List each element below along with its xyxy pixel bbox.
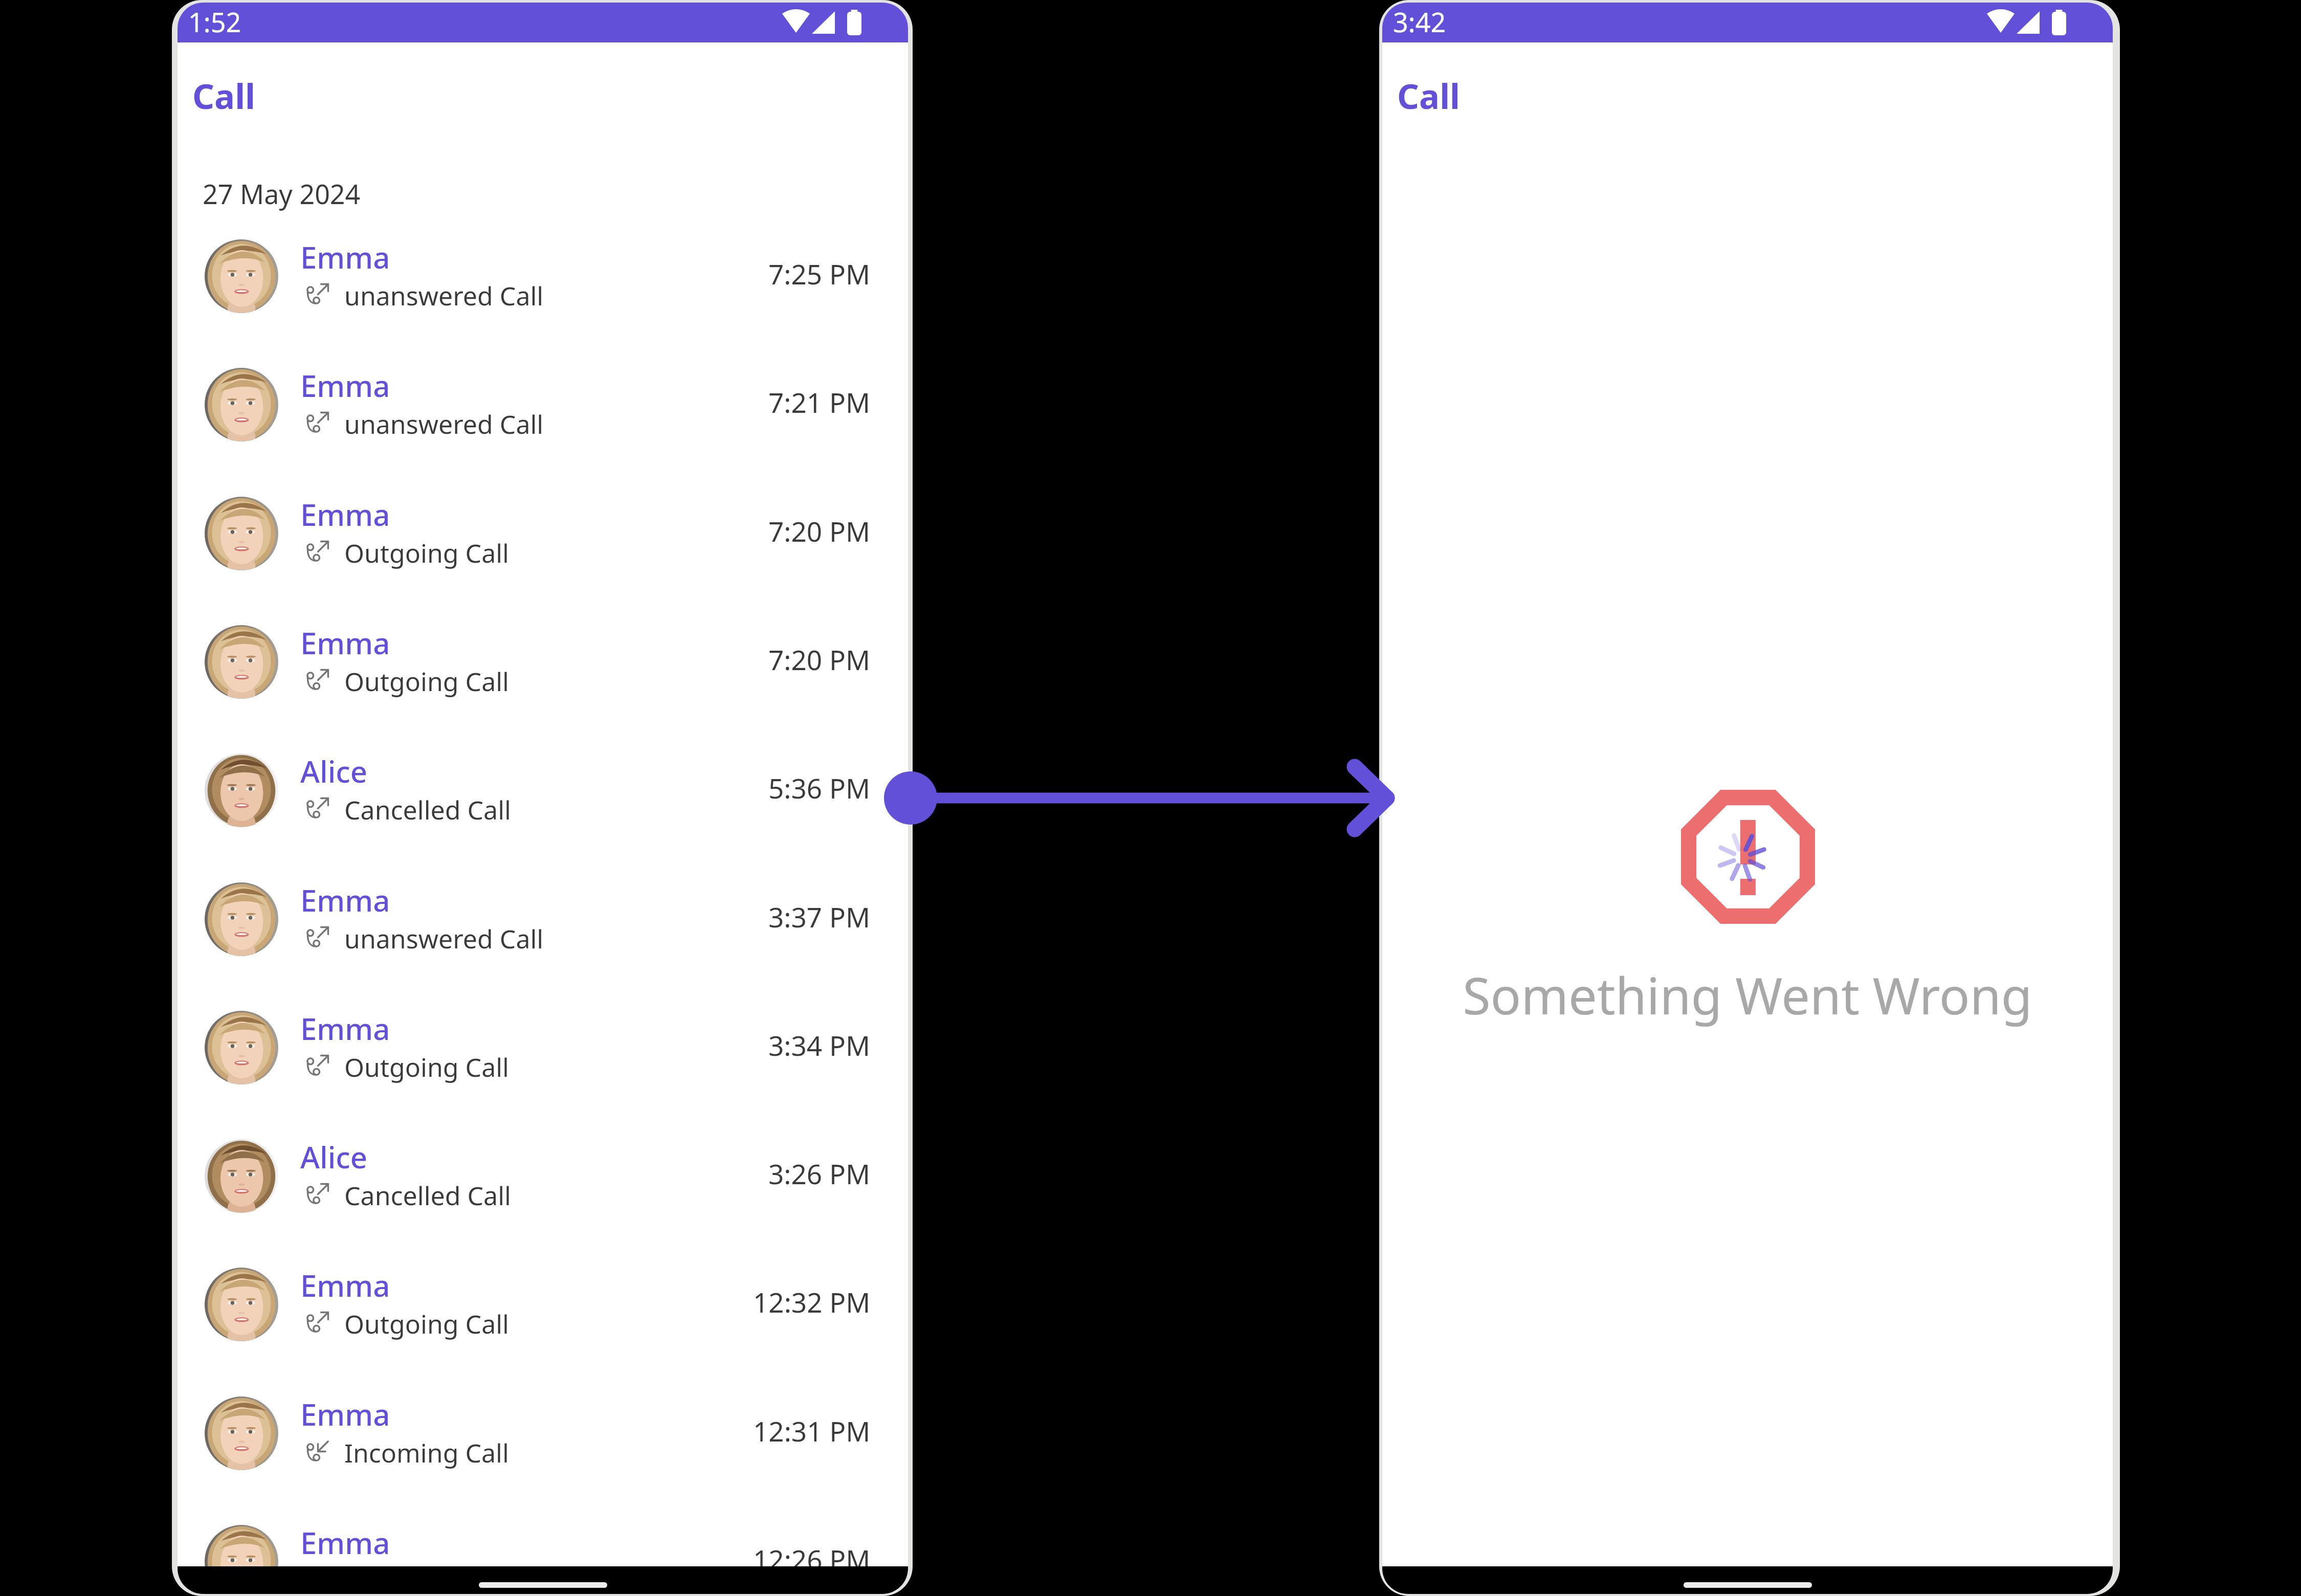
staticText: Incoming Call: [344, 1435, 509, 1470]
staticText: 7:21 PM: [768, 384, 871, 420]
button[interactable]: Open contact Emma: [178, 239, 908, 368]
staticText: 7:25 PM: [768, 255, 871, 292]
staticText: unanswered Call: [344, 407, 544, 441]
staticText: Cancelled Call: [344, 1178, 511, 1213]
button[interactable]: Open contact Alice: [178, 753, 908, 882]
staticText: unanswered Call: [344, 921, 544, 956]
staticText: Something Went Wrong: [1463, 960, 2032, 1029]
staticText: 3:42: [1393, 4, 1446, 40]
staticText: Call: [192, 72, 256, 119]
button[interactable]: Open contact Emma: [178, 1525, 908, 1594]
button[interactable]: Open contact Emma: [178, 1011, 908, 1139]
staticText: Cancelled Call: [344, 792, 511, 827]
staticText: Emma: [300, 1265, 390, 1305]
staticText: 3:34 PM: [768, 1027, 871, 1063]
staticText: Emma: [300, 365, 390, 406]
staticText: 12:31 PM: [753, 1412, 871, 1449]
button[interactable]: Open contact Alice: [205, 1139, 278, 1213]
staticText: unanswered Call: [344, 278, 544, 313]
button[interactable]: Open contact Emma: [205, 625, 278, 699]
staticText: Outgoing Call: [344, 1050, 509, 1084]
staticText: Alice: [300, 751, 368, 791]
staticText: Emma: [300, 237, 390, 277]
staticText: Outgoing Call: [344, 1564, 509, 1594]
staticText: Call: [1397, 72, 1461, 119]
staticText: 3:37 PM: [768, 898, 871, 935]
button[interactable]: Open contact Emma: [178, 882, 908, 1011]
button[interactable]: Open contact Emma: [178, 625, 908, 753]
staticText: 27 May 2024: [203, 175, 361, 212]
button[interactable]: Open contact Emma: [205, 1396, 278, 1470]
staticText: 12:32 PM: [753, 1283, 871, 1320]
staticText: 1:52: [188, 4, 241, 40]
staticText: Emma: [300, 1522, 390, 1563]
staticText: 3:26 PM: [768, 1155, 871, 1192]
staticText: Outgoing Call: [344, 664, 509, 699]
button[interactable]: Open contact Emma: [178, 1396, 908, 1525]
button[interactable]: Open contact Emma: [205, 497, 278, 570]
staticText: 7:20 PM: [768, 641, 871, 678]
button[interactable]: Open contact Emma: [178, 368, 908, 496]
button[interactable]: Retry, something went wrong: [1681, 790, 1815, 924]
button[interactable]: Open contact Emma: [178, 1268, 908, 1396]
staticText: Alice: [300, 1137, 368, 1177]
staticText: Emma: [300, 880, 390, 920]
staticText: 5:36 PM: [768, 769, 871, 806]
button[interactable]: Open contact Emma: [205, 368, 278, 441]
button[interactable]: Open contact Emma: [205, 1268, 278, 1341]
button[interactable]: Open contact Alice: [178, 1139, 908, 1268]
staticText: Outgoing Call: [344, 536, 509, 570]
staticText: Emma: [300, 623, 390, 663]
staticText: 12:26 PM: [753, 1541, 871, 1578]
staticText: 7:20 PM: [768, 513, 871, 549]
button[interactable]: Open contact Emma: [178, 497, 908, 625]
button[interactable]: Open contact Emma: [205, 882, 278, 956]
staticText: Outgoing Call: [344, 1306, 509, 1341]
staticText: Emma: [300, 494, 390, 535]
button[interactable]: Open contact Emma: [205, 1011, 278, 1084]
button[interactable]: Open contact Emma: [205, 239, 278, 313]
staticText: Emma: [300, 1008, 390, 1049]
button[interactable]: Open contact Alice: [205, 753, 278, 827]
button[interactable]: Open contact Emma: [205, 1525, 278, 1594]
staticText: Emma: [300, 1394, 390, 1434]
